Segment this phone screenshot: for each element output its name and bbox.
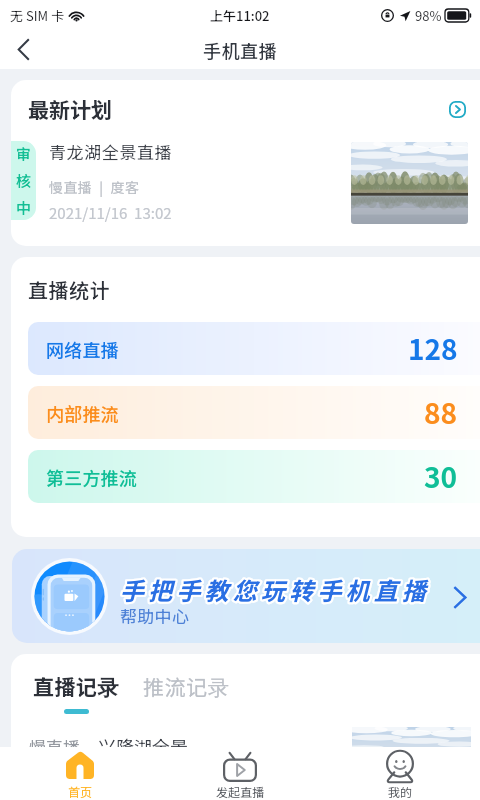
button[interactable]: 慢直播 xyxy=(11,727,480,797)
staticText: 128 xyxy=(408,328,458,369)
staticText: 直播记录 xyxy=(33,671,119,702)
staticText: 手把手教您玩转手机直播 xyxy=(120,572,431,607)
staticText: 我的 xyxy=(388,783,413,800)
button[interactable]: 我的 xyxy=(320,747,480,800)
button[interactable]: 内部推流 xyxy=(28,386,480,439)
staticText: 发起直播 xyxy=(216,783,265,800)
staticText: 最新计划 xyxy=(28,94,112,124)
staticText: 第三方推流 xyxy=(46,464,137,490)
staticText: 兴隆湖全景 xyxy=(98,733,188,759)
button[interactable]: 直播记录 xyxy=(21,665,131,723)
staticText: 98% xyxy=(415,6,442,25)
staticText: 中 xyxy=(16,197,32,219)
staticText: 推流记录 xyxy=(143,671,230,702)
staticText: 慢直播 | 度客 xyxy=(49,177,140,197)
button[interactable]: 最新计划 xyxy=(11,80,480,246)
staticText: 内部推流 xyxy=(46,400,119,426)
staticText: 30 xyxy=(424,456,458,497)
button[interactable]: 发起直播 xyxy=(160,747,320,800)
staticText: 88 xyxy=(424,392,458,433)
staticText: 审 xyxy=(16,143,32,165)
staticText: 无 SIM 卡 xyxy=(10,6,64,25)
button[interactable]: 第三方推流 xyxy=(28,450,480,503)
staticText: 帮助中心 xyxy=(120,603,190,628)
staticText: 网络直播 xyxy=(46,336,119,362)
staticText: 慢直播 xyxy=(29,734,80,759)
staticText: 青龙湖全景直播 xyxy=(49,139,173,164)
staticText: 上午11:02 xyxy=(210,6,270,25)
staticText: 核 xyxy=(16,170,32,192)
staticText: 首页 xyxy=(68,783,93,800)
button[interactable]: More xyxy=(446,98,468,120)
staticText: 手把手教您玩转手机直播 xyxy=(120,572,431,607)
button[interactable]: Back xyxy=(0,30,46,69)
button[interactable]: 首页 xyxy=(0,747,160,800)
staticText: 手机直播 xyxy=(203,37,277,63)
button[interactable]: 网络直播 xyxy=(28,322,480,375)
staticText: 直播统计 xyxy=(28,275,111,304)
staticText: 2021/11/16 13:02 xyxy=(49,202,172,224)
button[interactable]: 推流记录 xyxy=(143,671,230,702)
button[interactable]: 手把手教您玩转手机直播 xyxy=(12,549,480,643)
